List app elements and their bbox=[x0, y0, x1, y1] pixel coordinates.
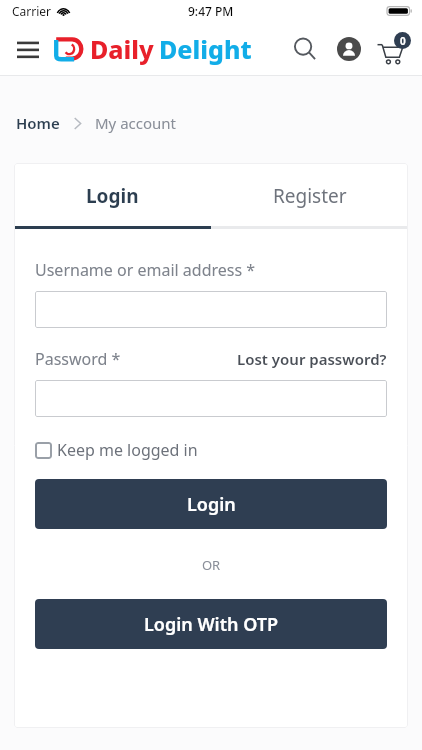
button[interactable]: Login With OTP bbox=[35, 599, 387, 649]
button[interactable]: Home bbox=[16, 113, 60, 133]
button[interactable]: Daily Delight logo bbox=[52, 32, 86, 66]
staticText: 9:47 PM bbox=[188, 3, 234, 19]
button[interactable] bbox=[35, 380, 387, 417]
staticText: Password * bbox=[35, 348, 121, 370]
button[interactable]: My account bbox=[330, 30, 368, 68]
button[interactable]: Menu bbox=[8, 29, 48, 69]
staticText: Login bbox=[187, 492, 236, 517]
button[interactable]: Search bbox=[286, 30, 324, 68]
button[interactable]: Lost your password? bbox=[237, 349, 387, 369]
staticText: Lost your password? bbox=[237, 349, 387, 369]
staticText: OR bbox=[35, 556, 387, 574]
staticText: 0 bbox=[400, 34, 406, 48]
button[interactable]: Register bbox=[211, 163, 408, 228]
staticText: Login bbox=[86, 183, 139, 209]
staticText: My account bbox=[95, 113, 177, 133]
staticText: Delight bbox=[159, 32, 252, 66]
staticText: Carrier bbox=[12, 3, 52, 19]
button[interactable] bbox=[35, 291, 387, 328]
staticText: Register bbox=[273, 183, 347, 209]
button[interactable]: Login bbox=[14, 163, 211, 228]
button[interactable]: Login bbox=[35, 479, 387, 529]
staticText: Keep me logged in bbox=[57, 439, 198, 461]
button[interactable]: Keep me logged in bbox=[35, 439, 198, 461]
staticText: Home bbox=[16, 113, 60, 133]
staticText: Username or email address * bbox=[35, 259, 256, 281]
staticText: Daily bbox=[90, 32, 154, 66]
button[interactable]: Cart, 0 items bbox=[372, 27, 416, 71]
staticText: Login With OTP bbox=[144, 612, 279, 637]
